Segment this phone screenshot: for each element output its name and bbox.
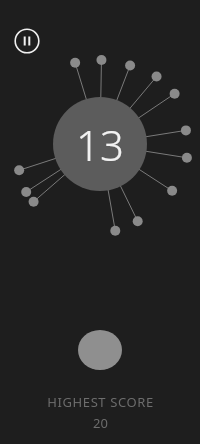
- button[interactable]: Shoot pin: [78, 330, 122, 370]
- staticText: 13: [76, 116, 124, 173]
- staticText: 20: [93, 414, 108, 432]
- staticText: HIGHEST SCORE: [47, 393, 154, 411]
- button[interactable]: Pause: [14, 28, 40, 54]
